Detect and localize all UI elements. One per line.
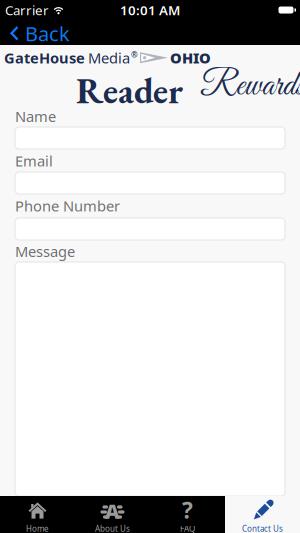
staticText: Reader <box>76 67 183 114</box>
staticText: Media <box>88 48 130 67</box>
button[interactable]: Home <box>0 496 75 533</box>
staticText: About Us <box>95 523 130 533</box>
button[interactable]: A <box>75 496 150 533</box>
staticText: Back <box>25 20 70 47</box>
button[interactable]: Phone Number text field <box>15 218 285 240</box>
staticText: Name <box>15 106 56 126</box>
staticText: Home <box>26 523 49 533</box>
staticText: GateHouse <box>4 48 85 67</box>
staticText: A <box>105 498 120 524</box>
button[interactable]: Email text field <box>15 172 285 194</box>
staticText: Carrier <box>5 1 49 19</box>
button[interactable]: Contact Us <box>225 496 300 533</box>
staticText: Message <box>15 241 75 261</box>
staticText: Email <box>15 151 53 170</box>
button[interactable]: Back <box>0 18 70 47</box>
staticText: 10:01 AM <box>120 1 180 19</box>
staticText: Phone Number <box>15 196 120 215</box>
staticText: ® <box>131 49 138 60</box>
button[interactable]: ? <box>150 496 225 533</box>
staticText: Contact Us <box>242 523 283 533</box>
staticText: FAQ <box>180 523 195 533</box>
staticText: ? <box>182 495 193 525</box>
staticText: Rewards <box>200 65 300 108</box>
staticText: OHIO <box>170 48 211 67</box>
button[interactable]: Name text field <box>15 127 285 149</box>
